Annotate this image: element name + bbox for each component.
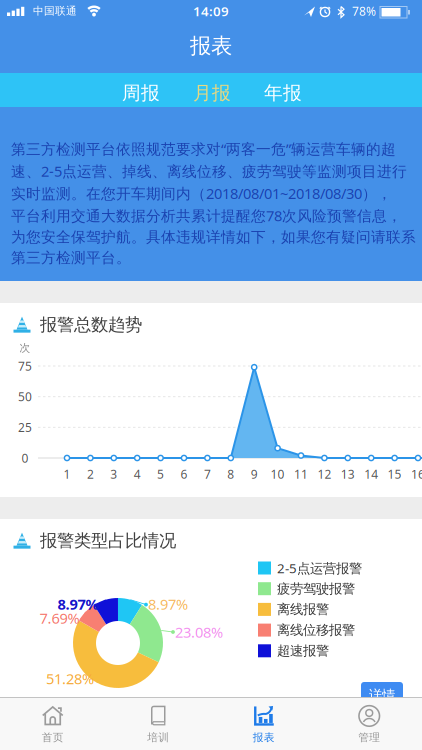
- staticText: 78%: [352, 3, 376, 19]
- staticText: 25: [18, 419, 32, 435]
- staticText: 1: [63, 466, 70, 482]
- staticText: 3: [110, 466, 117, 482]
- staticText: 12: [317, 466, 331, 482]
- button[interactable]: 详情: [361, 682, 403, 708]
- staticText: 年报: [264, 81, 302, 104]
- staticText: 23.08%: [175, 622, 223, 642]
- staticText: 50: [18, 389, 32, 405]
- button[interactable]: 培训: [106, 697, 211, 750]
- staticText: 6: [180, 466, 187, 482]
- staticText: 报表: [190, 33, 232, 59]
- staticText: 第三方检测平台依照规范要求对“两客一危”辆运营车辆的超 速、2-5点运营、掉线、…: [11, 139, 416, 267]
- staticText: 8.97%: [57, 594, 98, 614]
- staticText: 月报: [193, 81, 231, 104]
- staticText: 51.28%: [46, 669, 94, 688]
- staticText: 疲劳驾驶报警: [277, 580, 355, 597]
- staticText: 2: [87, 466, 94, 482]
- staticText: 7: [204, 466, 211, 482]
- staticText: 4: [134, 466, 141, 482]
- button[interactable]: 周报: [122, 81, 160, 104]
- staticText: 5: [157, 466, 164, 482]
- staticText: 次: [19, 341, 30, 354]
- button[interactable]: 管理: [317, 697, 422, 750]
- staticText: 周报: [122, 81, 160, 104]
- staticText: 15: [388, 466, 402, 482]
- staticText: 超速报警: [277, 643, 329, 659]
- staticText: 离线位移报警: [277, 622, 355, 638]
- staticText: 中国联通: [33, 4, 77, 17]
- staticText: 离线报警: [277, 601, 329, 618]
- staticText: 13: [341, 466, 355, 482]
- staticText: 14:09: [193, 2, 229, 20]
- staticText: 0: [21, 450, 28, 466]
- button[interactable]: 月报: [193, 81, 231, 104]
- staticText: 报警类型占比情况: [40, 530, 176, 551]
- staticText: 7.69%: [39, 608, 79, 628]
- staticText: 培训: [147, 731, 169, 744]
- staticText: 2-5点运营报警: [277, 559, 362, 577]
- button[interactable]: 年报: [264, 81, 302, 104]
- staticText: 8: [227, 466, 234, 482]
- staticText: 14: [364, 466, 378, 482]
- button[interactable]: 首页: [0, 697, 105, 750]
- staticText: 详情: [369, 687, 395, 703]
- staticText: 10: [271, 466, 285, 482]
- staticText: 首页: [42, 731, 64, 744]
- staticText: 16: [411, 466, 422, 482]
- staticText: 9: [251, 466, 258, 482]
- button[interactable]: 报表: [211, 697, 316, 750]
- staticText: 75: [18, 358, 32, 374]
- staticText: 报警总数趋势: [40, 314, 142, 335]
- staticText: 管理: [358, 731, 380, 744]
- staticText: 8.97%: [148, 594, 188, 614]
- staticText: 11: [294, 466, 308, 482]
- staticText: 报表: [253, 731, 275, 744]
